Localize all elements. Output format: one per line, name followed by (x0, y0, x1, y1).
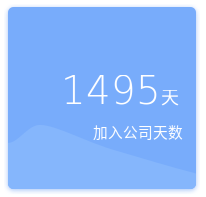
staticText: 1495 (61, 68, 161, 113)
button[interactable]: 1495 (8, 7, 196, 189)
staticText: 加入公司天数 (93, 121, 183, 142)
staticText: 天 (161, 83, 179, 109)
